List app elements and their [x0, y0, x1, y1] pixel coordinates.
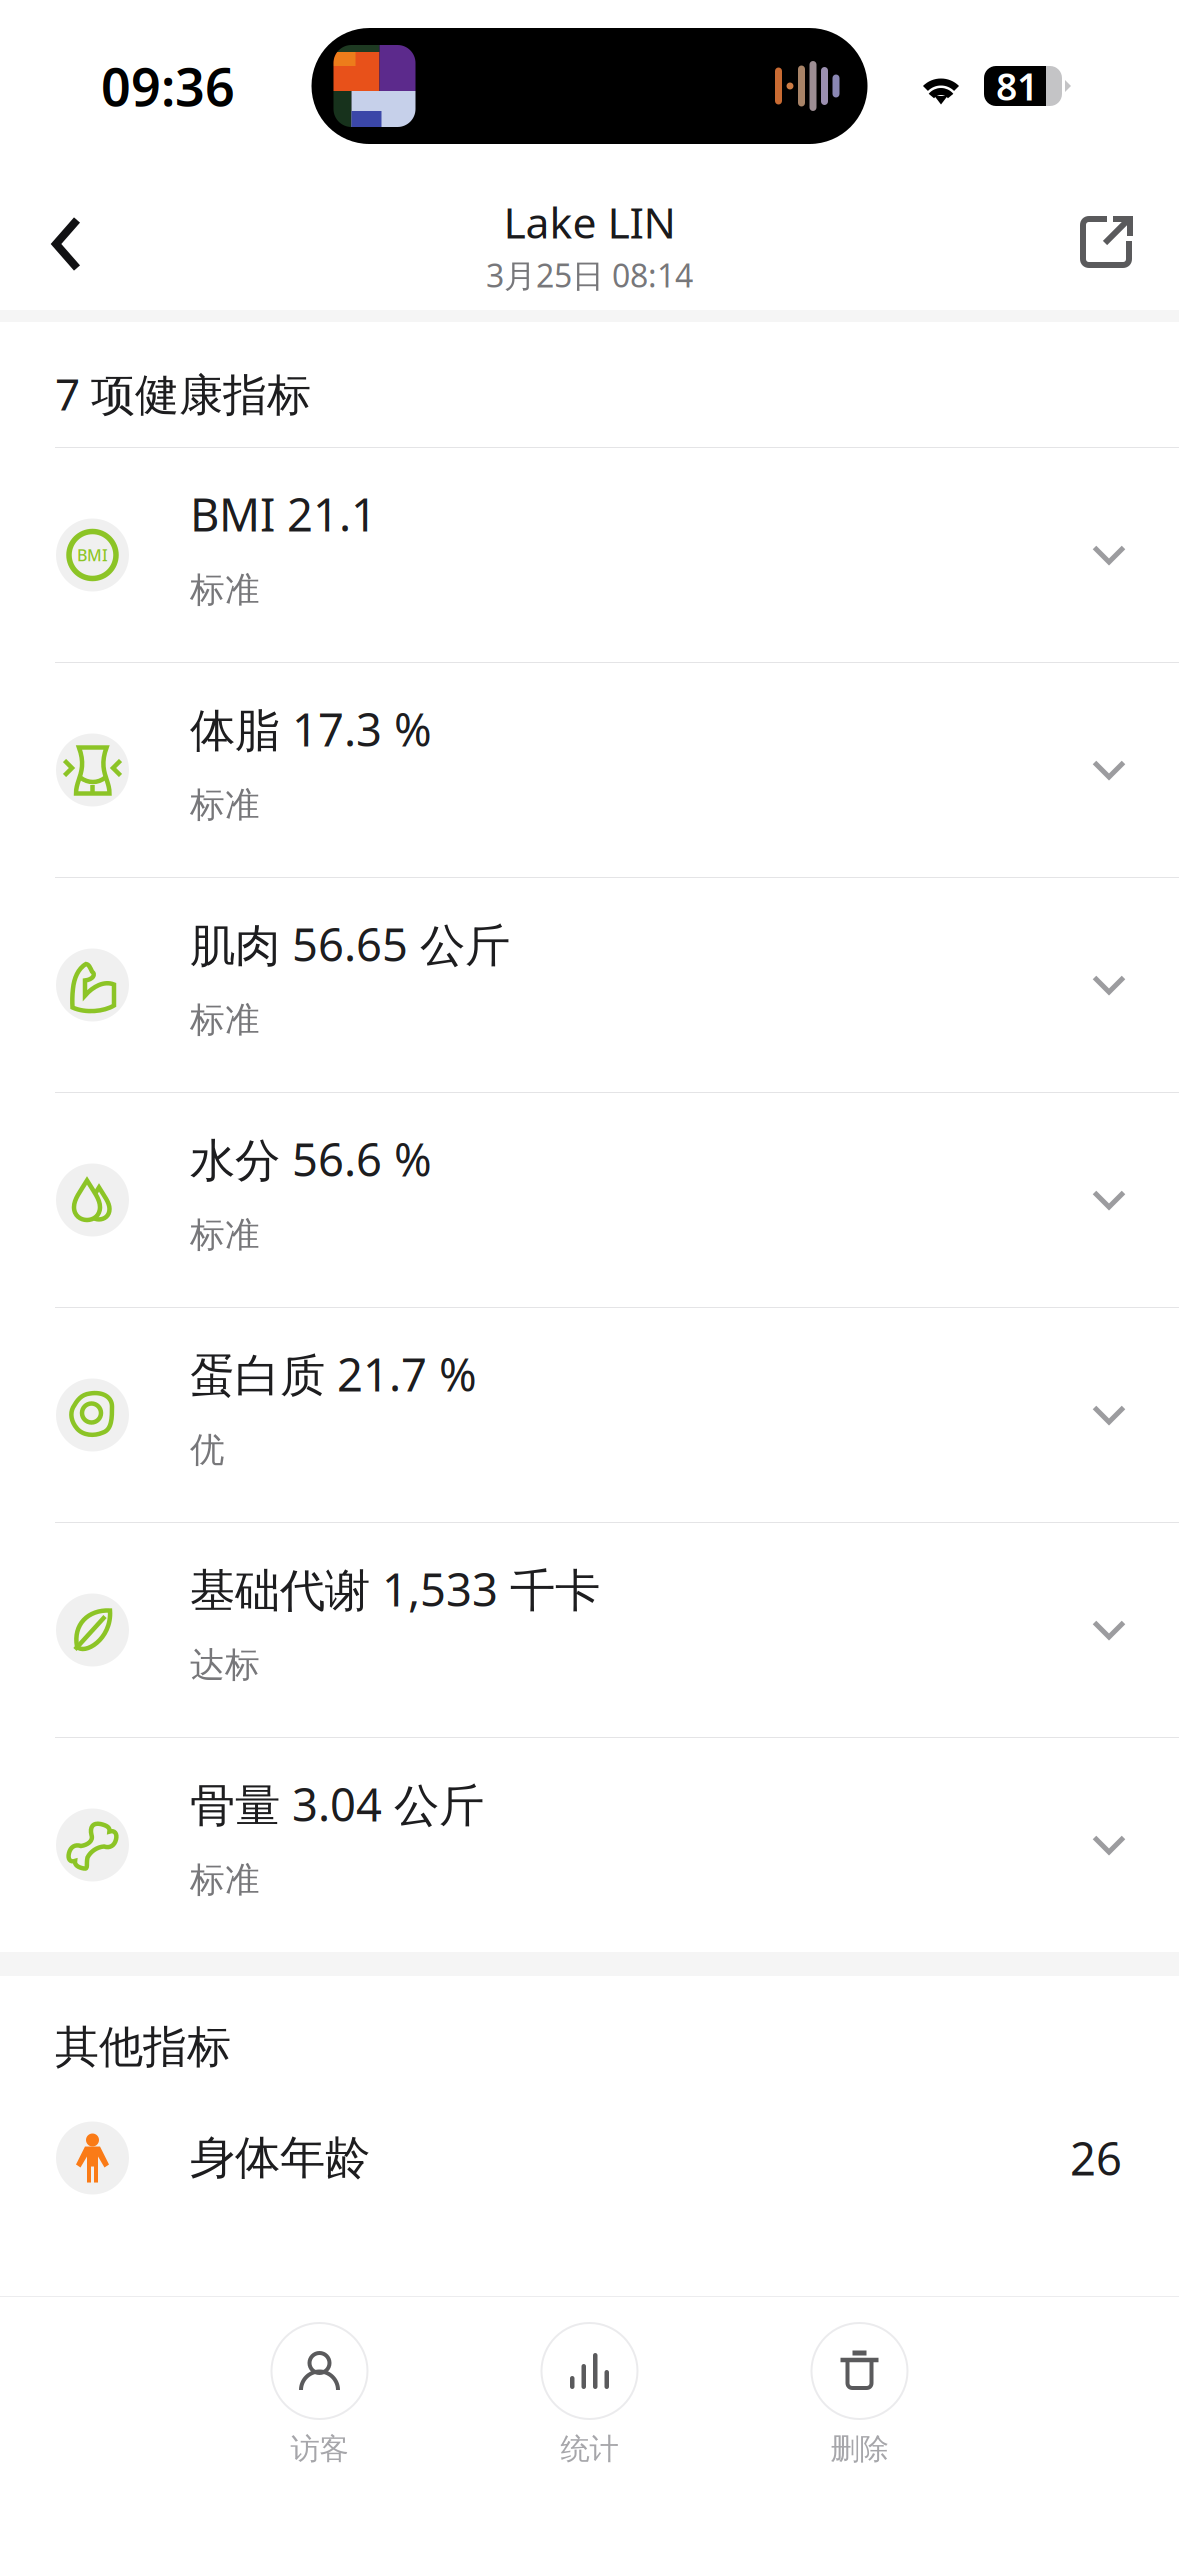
button[interactable]: 基础代谢 1,533 千卡 [0, 1523, 1179, 1737]
staticText: 标准 [190, 784, 260, 826]
staticText: 其他指标 [55, 2020, 231, 2074]
button[interactable]: Share [1041, 185, 1161, 297]
button[interactable]: 删除 [724, 2323, 994, 2467]
staticText: 肌肉 56.65 公斤 [190, 914, 510, 974]
staticText: 访客 [290, 2431, 348, 2467]
staticText: 标准 [190, 999, 260, 1041]
button[interactable]: 访客 [184, 2323, 454, 2467]
staticText: 26 [1070, 2128, 1122, 2188]
staticText: 蛋白质 21.7 % [190, 1344, 477, 1404]
staticText: 标准 [190, 1214, 260, 1256]
staticText: 7 项健康指标 [55, 364, 311, 423]
staticText: 水分 56.6 % [190, 1129, 432, 1189]
staticText: 删除 [830, 2431, 888, 2467]
button[interactable]: 水分 56.6 % [0, 1093, 1179, 1307]
staticText: 基础代谢 1,533 千卡 [190, 1559, 600, 1619]
staticText: 3月25日 08:14 [486, 254, 693, 296]
button[interactable]: 肌肉 56.65 公斤 [0, 878, 1179, 1092]
staticText: 标准 [190, 1859, 260, 1901]
staticText: Lake LIN [503, 194, 675, 250]
button[interactable]: 身体年龄 [0, 2094, 1179, 2222]
button[interactable]: Back [18, 185, 121, 297]
staticText: BMI [77, 544, 108, 566]
staticText: BMI 21.1 [190, 484, 377, 544]
staticText: 体脂 17.3 % [190, 699, 432, 759]
button[interactable]: 骨量 3.04 公斤 [0, 1738, 1179, 1952]
button[interactable]: 蛋白质 21.7 % [0, 1308, 1179, 1522]
button[interactable]: BMI [0, 448, 1179, 662]
staticText: 统计 [560, 2431, 618, 2467]
staticText: 优 [190, 1429, 225, 1471]
button[interactable]: 体脂 17.3 % [0, 663, 1179, 877]
button[interactable]: 统计 [454, 2323, 724, 2467]
staticText: 标准 [190, 569, 260, 611]
staticText: 81 [996, 61, 1038, 111]
staticText: 09:36 [101, 51, 235, 121]
staticText: 身体年龄 [190, 2130, 370, 2186]
staticText: 达标 [190, 1644, 260, 1686]
staticText: 骨量 3.04 公斤 [190, 1774, 484, 1834]
